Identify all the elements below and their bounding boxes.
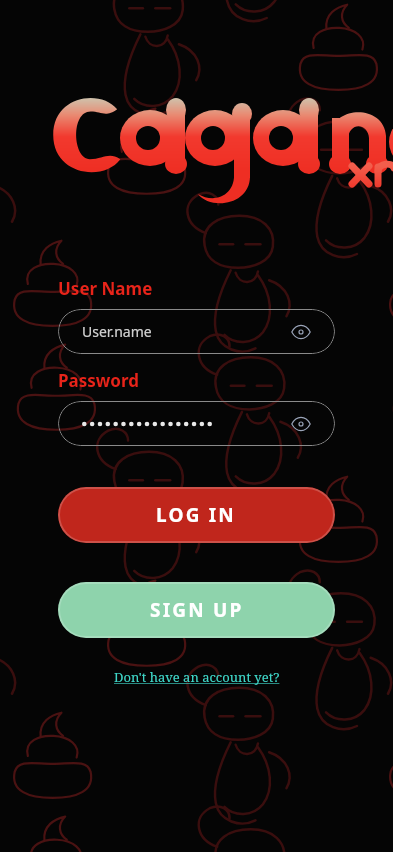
button[interactable]: Show user name	[289, 320, 313, 344]
staticText: User.name	[82, 322, 152, 341]
staticText: Don't have an account yet?	[114, 668, 280, 686]
button[interactable]: User.name	[58, 309, 335, 354]
button[interactable]: Don't have an account yet?	[110, 664, 284, 690]
button[interactable]: Show password	[58, 401, 335, 446]
button[interactable]: Show password	[289, 412, 313, 436]
staticText: User Name	[58, 277, 153, 300]
staticText: LOG IN	[156, 502, 237, 528]
staticText: Password	[58, 369, 139, 392]
button[interactable]: SIGN UP	[58, 582, 335, 638]
button[interactable]: LOG IN	[58, 487, 335, 543]
staticText: SIGN UP	[150, 597, 244, 623]
